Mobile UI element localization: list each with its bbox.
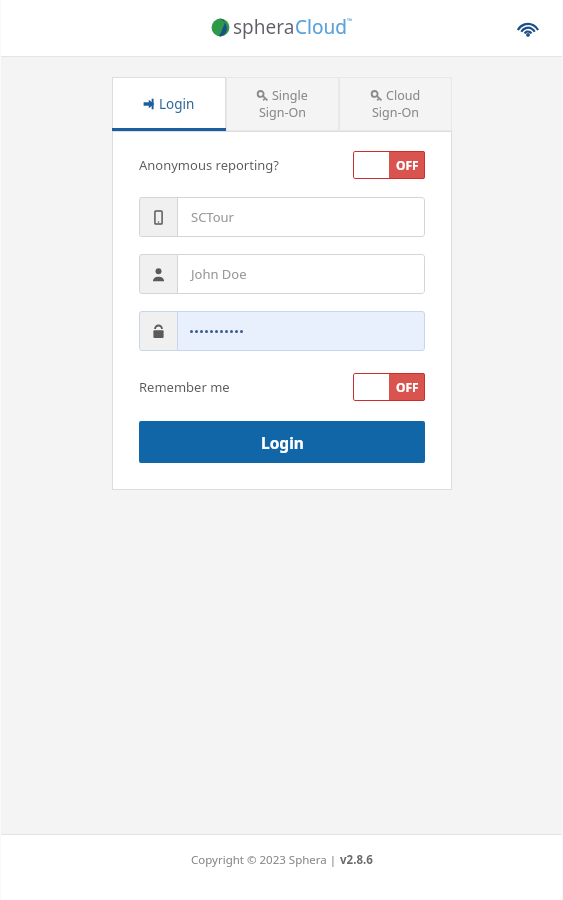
staticText: ™: [347, 16, 353, 25]
staticText: OFF: [396, 379, 419, 395]
staticText: Single: [272, 87, 308, 104]
staticText: Cloud: [295, 14, 347, 40]
staticText: John Doe: [191, 265, 247, 283]
staticText: Login: [159, 95, 195, 113]
staticText: Sign-On: [372, 104, 420, 121]
staticText: Anonymous reporting?: [139, 156, 279, 174]
staticText: Cloud: [386, 87, 421, 104]
staticText: Sign-On: [259, 104, 307, 121]
button[interactable]: John Doe: [139, 254, 425, 294]
button[interactable]: Single: [226, 77, 339, 131]
staticText: Login: [261, 432, 304, 453]
staticText: Remember me: [139, 378, 230, 396]
button[interactable]: Login: [139, 421, 425, 463]
button[interactable]: [139, 311, 425, 351]
button[interactable]: SCTour: [139, 197, 425, 237]
button[interactable]: Cloud: [339, 77, 452, 131]
staticText: Copyright © 2023 Sphera |: [191, 852, 340, 868]
staticText: SCTour: [191, 208, 234, 226]
button[interactable]: Toggle off: [353, 151, 425, 179]
button[interactable]: Connection status: [511, 11, 545, 45]
button[interactable]: Toggle off: [353, 373, 425, 401]
staticText: v2.8.6: [340, 852, 373, 868]
button[interactable]: Login: [112, 77, 226, 131]
staticText: sphera: [233, 14, 295, 40]
staticText: OFF: [396, 157, 419, 173]
